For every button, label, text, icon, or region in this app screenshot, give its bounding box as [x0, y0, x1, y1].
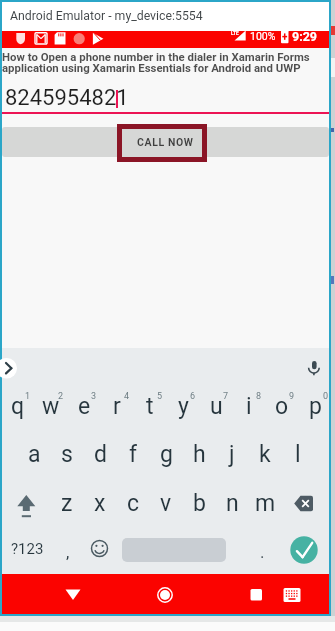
staticText: 1 [25, 391, 31, 402]
button[interactable]: f [118, 437, 148, 471]
staticText: a [28, 441, 41, 468]
button[interactable]: 2 [55, 390, 67, 402]
button[interactable] [8, 488, 38, 516]
staticText: x [94, 490, 106, 517]
staticText: . [260, 542, 265, 562]
staticText: s [61, 441, 73, 468]
button[interactable]: x [85, 486, 115, 520]
staticText: 100% [250, 30, 276, 42]
button[interactable]: w [36, 389, 66, 423]
button[interactable] [132, 577, 198, 611]
button[interactable]: j [217, 437, 247, 471]
staticText: g [160, 441, 173, 468]
staticText: 0 [323, 391, 329, 402]
button[interactable]: b [184, 486, 214, 520]
button[interactable]: CALL NOW [2, 127, 329, 157]
staticText: t [146, 393, 154, 420]
button[interactable] [304, 357, 326, 379]
button[interactable] [291, 533, 317, 559]
button[interactable]: . [247, 535, 277, 569]
staticText: j [229, 441, 235, 468]
button[interactable]: u [201, 389, 231, 423]
button[interactable]: 7 [220, 390, 232, 402]
staticText: , [66, 542, 70, 562]
staticText: m [255, 490, 276, 517]
staticText: Android Emulator - my_device:5554 [10, 9, 203, 23]
button[interactable] [88, 535, 112, 559]
staticText: 9 [289, 391, 295, 402]
button[interactable]: d [85, 437, 115, 471]
staticText: 9:29 [292, 29, 318, 44]
button[interactable] [283, 585, 303, 605]
staticText: 8245954821 [5, 85, 129, 111]
button[interactable]: o [267, 389, 297, 423]
button[interactable]: h [184, 437, 214, 471]
staticText: d [94, 441, 107, 468]
staticText: 8 [256, 391, 262, 402]
staticText: 2 [58, 391, 64, 402]
staticText: r [113, 393, 121, 420]
button[interactable] [289, 488, 319, 516]
staticText: b [193, 490, 206, 517]
button[interactable]: v [151, 486, 181, 520]
staticText: 5 [157, 391, 163, 402]
staticText: f [129, 441, 137, 468]
button[interactable] [0, 358, 20, 378]
button[interactable]: , [53, 535, 83, 569]
button[interactable] [3, 86, 329, 112]
staticText: o [275, 393, 289, 420]
staticText: y [178, 393, 189, 420]
staticText: v [160, 490, 172, 517]
staticText: LTE [231, 31, 239, 37]
button[interactable]: y [168, 389, 198, 423]
button[interactable]: t [135, 389, 165, 423]
button[interactable]: e [69, 389, 99, 423]
button[interactable]: n [217, 486, 247, 520]
staticText: ?123 [11, 540, 44, 558]
button[interactable]: 4 [121, 390, 133, 402]
button[interactable]: i [234, 389, 264, 423]
button[interactable]: ?123 [4, 532, 50, 566]
staticText: l [295, 441, 301, 468]
staticText: i [246, 393, 252, 420]
button[interactable] [40, 577, 106, 611]
button[interactable]: 8 [253, 390, 265, 402]
button[interactable]: 5 [154, 390, 166, 402]
button[interactable] [221, 577, 287, 611]
button[interactable]: 1 [22, 390, 34, 402]
button[interactable]: r [102, 389, 132, 423]
staticText: p [309, 393, 322, 420]
button[interactable]: a [19, 437, 49, 471]
button[interactable]: m [250, 486, 280, 520]
staticText: 6 [190, 391, 196, 402]
button[interactable]: 6 [187, 390, 199, 402]
button[interactable]: k [250, 437, 280, 471]
staticText: c [127, 490, 140, 517]
staticText: 4 [124, 391, 130, 402]
button[interactable]: c [118, 486, 148, 520]
staticText: u [210, 393, 223, 420]
button[interactable]: g [151, 437, 181, 471]
staticText: n [226, 490, 239, 517]
button[interactable]: s [52, 437, 82, 471]
button[interactable]: 0 [320, 390, 332, 402]
staticText: q [11, 393, 25, 420]
button[interactable]: l [283, 437, 313, 471]
staticText: 3 [91, 391, 97, 402]
button[interactable]: 9 [286, 390, 298, 402]
button[interactable]: q [3, 389, 33, 423]
staticText: z [61, 490, 73, 517]
staticText: w [42, 393, 60, 420]
button[interactable]: p [300, 389, 330, 423]
staticText: k [259, 441, 271, 468]
button[interactable]: 3 [88, 390, 100, 402]
staticText: 7 [223, 391, 229, 402]
button[interactable]: z [52, 486, 82, 520]
staticText: How to Open a phone number in the dialer… [2, 50, 310, 75]
staticText: e [78, 393, 91, 420]
staticText: CALL NOW [137, 136, 194, 148]
staticText: h [193, 441, 206, 468]
